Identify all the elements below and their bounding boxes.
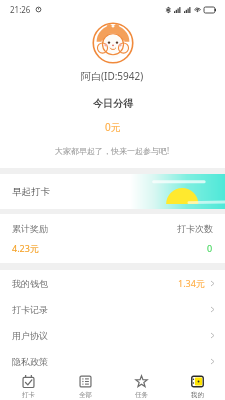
button[interactable]: 用户协议 bbox=[0, 322, 225, 348]
staticText: 今日分得 bbox=[93, 97, 133, 110]
staticText: 累计奖励 bbox=[12, 223, 48, 234]
staticText: 全部 bbox=[79, 391, 92, 399]
staticText: 隐私政策 bbox=[12, 356, 48, 367]
staticText: 我的钱包 bbox=[12, 278, 48, 289]
button[interactable]: 打卡记录 bbox=[0, 296, 225, 322]
staticText: 打卡 bbox=[22, 391, 35, 399]
staticText: 打卡次数 bbox=[177, 223, 213, 234]
staticText: 打卡记录 bbox=[12, 304, 48, 315]
button[interactable]: 早起打卡 bbox=[0, 174, 225, 209]
button[interactable]: 我的钱包 bbox=[0, 270, 225, 296]
staticText: 0元 bbox=[105, 120, 121, 134]
staticText: 1.34元 bbox=[178, 277, 205, 289]
staticText: 21:26 bbox=[10, 4, 31, 15]
staticText: 任务 bbox=[135, 391, 148, 399]
button[interactable]: 我的 bbox=[169, 374, 225, 400]
button[interactable]: 全部 bbox=[57, 374, 113, 400]
button[interactable]: 隐私政策 bbox=[0, 348, 225, 374]
staticText: 我的 bbox=[191, 391, 204, 399]
staticText: 用户协议 bbox=[12, 330, 48, 341]
button[interactable]: 打卡 bbox=[0, 374, 57, 400]
staticText: 4.23元 bbox=[12, 242, 39, 254]
staticText: 大家都早起了，快来一起参与吧! bbox=[55, 145, 170, 156]
button[interactable]: 任务 bbox=[113, 374, 169, 400]
staticText: 阿白(ID:5942) bbox=[81, 69, 144, 83]
staticText: 早起打卡 bbox=[12, 186, 50, 198]
staticText: 0 bbox=[207, 242, 213, 254]
